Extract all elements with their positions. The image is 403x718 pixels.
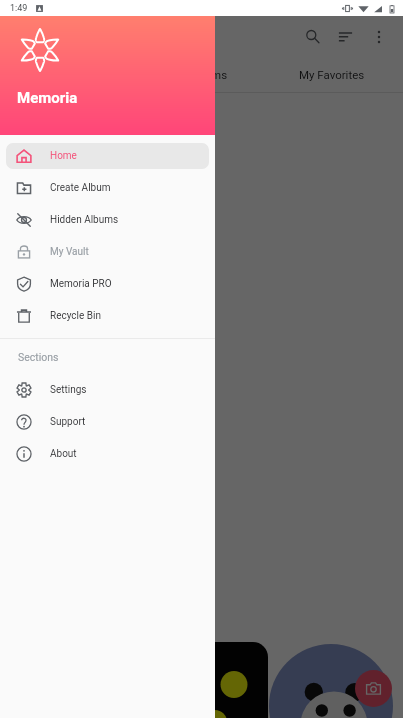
staticText: Settings	[50, 384, 87, 396]
staticText: About	[50, 448, 77, 460]
staticText: My Favorites	[299, 68, 365, 81]
staticText: Memoria	[17, 89, 78, 107]
staticText: Hidden Albums	[50, 214, 119, 226]
button[interactable]: Support	[6, 409, 209, 435]
staticText: Albums	[188, 68, 228, 81]
button[interactable]	[0, 16, 403, 718]
staticText: Home	[50, 150, 77, 162]
button[interactable]: Recycle Bin	[6, 303, 209, 329]
staticText: 1:49	[10, 3, 28, 14]
button[interactable]: Settings	[6, 377, 209, 403]
button[interactable]: Photos	[21, 56, 146, 92]
button[interactable]: Create Album	[6, 175, 209, 201]
button[interactable]: Search	[296, 20, 329, 53]
staticText: My Vault	[50, 246, 89, 258]
staticText: Support	[50, 416, 86, 428]
staticText: Sections	[18, 351, 59, 363]
button[interactable]: Take photo	[355, 670, 392, 707]
button[interactable]: Hidden Albums	[6, 207, 209, 233]
button[interactable]: Albums	[146, 56, 270, 92]
button[interactable]: My Vault	[6, 239, 209, 265]
staticText: Memoria PRO	[50, 278, 112, 290]
button[interactable]: Sort	[329, 20, 362, 53]
button[interactable]: More options	[362, 20, 395, 53]
button[interactable]: My Favorites	[270, 56, 394, 92]
staticText: Recycle Bin	[50, 310, 102, 322]
button[interactable]: Home	[6, 143, 209, 169]
staticText: Create Album	[50, 182, 111, 194]
button[interactable]: Memoria PRO	[6, 271, 209, 297]
button[interactable]: About	[6, 441, 209, 467]
